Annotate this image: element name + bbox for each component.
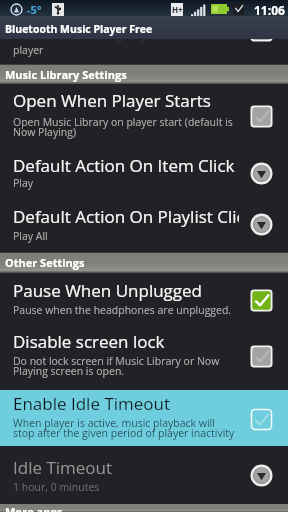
staticText: -5° <box>27 2 42 17</box>
staticText: When player is active, music playback wi… <box>13 416 235 440</box>
staticText: Play <box>13 176 34 190</box>
button[interactable]: Open When Player Starts <box>0 84 288 152</box>
staticText: Other Settings <box>5 255 85 270</box>
button[interactable]: Pause When Unplugged <box>0 273 288 325</box>
staticText: Music Library Settings <box>5 67 127 82</box>
staticText: Bluetooth Music Player Free <box>5 22 153 36</box>
other: Idle Timeout <box>250 464 273 487</box>
other: Default Action On Item Click <box>250 162 273 185</box>
staticText: Open Music Library on player start (defa… <box>13 115 233 139</box>
staticText: Bluetooth user settings anywhere in <box>13 28 190 42</box>
staticText: Do not lock screen if Music Library or N… <box>13 354 220 378</box>
other: Disable screen lock <box>250 345 273 368</box>
staticText: Default Action On Item Click <box>13 154 239 177</box>
staticText: H+ <box>172 4 183 15</box>
button[interactable]: Enable Idle Timeout <box>0 390 288 446</box>
staticText: Pause when the headphones are unplugged. <box>13 303 232 317</box>
staticText: Idle Timeout <box>13 456 239 479</box>
staticText: Pause When Unplugged <box>13 279 239 302</box>
staticText: Default Action On Playlist Click <box>13 205 239 228</box>
staticText: Play All <box>13 229 48 243</box>
staticText: Open When Player Starts <box>13 89 239 112</box>
other: Open When Player Starts <box>250 105 273 128</box>
staticText: More apps <box>5 504 63 512</box>
button[interactable]: Default Action On Item Click <box>0 152 288 200</box>
other: Default Action On Playlist Click <box>250 213 273 236</box>
staticText: 1 hour, 0 minutes <box>13 480 100 494</box>
staticText: 11:06 <box>254 2 285 18</box>
button[interactable]: Default Action On Playlist Click <box>0 200 288 252</box>
staticText: player <box>13 43 44 57</box>
button[interactable]: Disable screen lock <box>0 325 288 390</box>
other: Pause When Unplugged <box>250 289 273 312</box>
button[interactable]: Idle Timeout <box>0 446 288 504</box>
other: Enable Idle Timeout <box>250 408 273 431</box>
staticText: Disable screen lock <box>13 330 239 353</box>
staticText: Enable Idle Timeout <box>13 392 239 415</box>
